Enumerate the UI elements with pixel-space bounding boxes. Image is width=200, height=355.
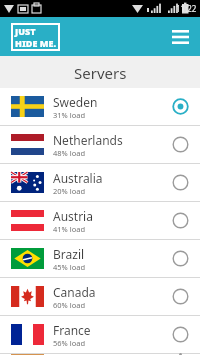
staticText: 45% load bbox=[53, 262, 86, 272]
staticText: Netherlands bbox=[53, 132, 123, 148]
staticText: Brazil bbox=[53, 246, 85, 262]
button[interactable]: Canada bbox=[0, 278, 200, 315]
staticText: Servers bbox=[74, 63, 127, 83]
staticText: France bbox=[53, 322, 91, 338]
staticText: 31% load bbox=[53, 110, 86, 120]
staticText: Austria bbox=[53, 208, 93, 224]
staticText: JUST bbox=[15, 25, 36, 37]
staticText: Australia bbox=[53, 170, 103, 186]
staticText: HIDE ME. bbox=[15, 37, 56, 49]
button[interactable]: Netherlands bbox=[0, 126, 200, 163]
staticText: 56% load bbox=[53, 338, 86, 348]
staticText: 60% load bbox=[53, 300, 86, 310]
staticText: 48% load bbox=[53, 148, 86, 158]
staticText: 20% load bbox=[53, 186, 86, 196]
button[interactable]: France bbox=[0, 316, 200, 353]
staticText: Sweden bbox=[53, 94, 98, 110]
staticText: 11:22 bbox=[176, 3, 197, 14]
button[interactable]: Just Hide Me home bbox=[15, 25, 56, 49]
button[interactable]: Austria bbox=[0, 202, 200, 239]
button[interactable]: Germany bbox=[0, 354, 200, 355]
button[interactable]: Open navigation menu bbox=[169, 26, 191, 48]
staticText: 41% load bbox=[53, 224, 86, 234]
button[interactable]: Brazil bbox=[0, 240, 200, 277]
button[interactable]: Australia bbox=[0, 164, 200, 201]
staticText: Canada bbox=[53, 284, 96, 300]
button[interactable]: Sweden bbox=[0, 88, 200, 125]
